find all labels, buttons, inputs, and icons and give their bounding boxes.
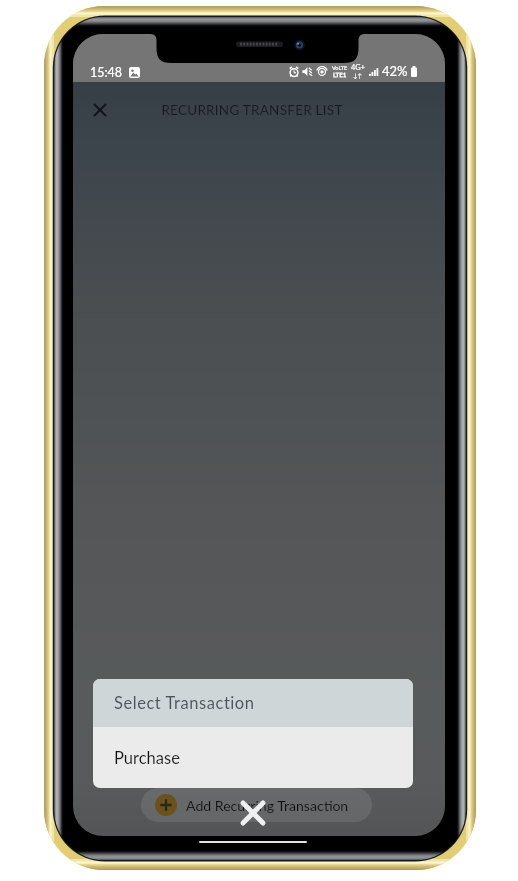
staticText: 42% xyxy=(382,63,408,79)
staticText: LTE1 xyxy=(333,71,347,78)
staticText: Add Recurring Transaction xyxy=(186,797,349,814)
staticText: 15:48 xyxy=(90,65,123,80)
staticText: RECURRING TRANSFER LIST xyxy=(161,102,343,118)
staticText: 4G+ xyxy=(351,63,365,72)
staticText: ↓↑ xyxy=(353,72,363,79)
other: Close xyxy=(240,800,266,826)
staticText: Purchase xyxy=(114,748,180,768)
button[interactable]: Add Recurring Transaction xyxy=(141,788,372,822)
staticText: Select Transaction xyxy=(114,693,255,713)
button[interactable]: Purchase xyxy=(93,727,413,788)
button[interactable]: Close xyxy=(84,94,116,126)
staticText: VoLTE xyxy=(332,64,348,71)
